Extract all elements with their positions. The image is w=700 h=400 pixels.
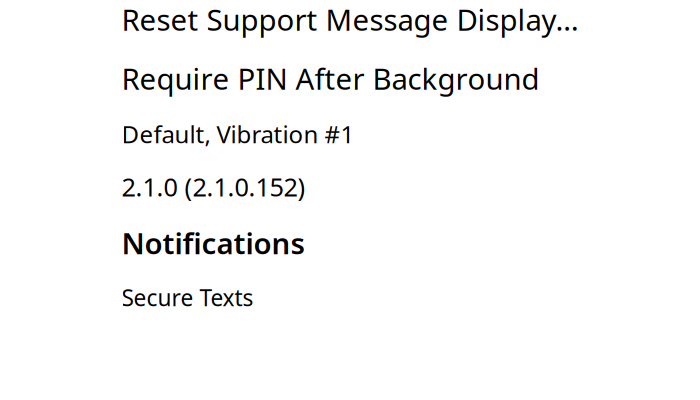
staticText: Reset Support Message Display…: [121, 0, 578, 39]
staticText: Secure Texts: [121, 282, 253, 312]
staticText: 2.1.0 (2.1.0.152): [121, 170, 305, 203]
staticText: Default, Vibration #1: [121, 118, 354, 150]
staticText: Require PIN After Background: [121, 59, 539, 98]
staticText: Notifications: [121, 223, 304, 262]
